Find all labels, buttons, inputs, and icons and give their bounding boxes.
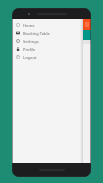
staticText: Logout	[23, 55, 37, 60]
staticText: Booking Table	[23, 31, 50, 36]
button[interactable]: Profile	[12, 45, 83, 53]
button[interactable]: Settings	[12, 37, 83, 45]
staticText: Home	[23, 23, 35, 28]
staticText: Settings	[23, 39, 39, 44]
button[interactable]: Logout	[12, 53, 83, 61]
staticText: Profile	[23, 47, 36, 52]
button[interactable]: Booking Table	[12, 29, 83, 37]
button[interactable]: Home	[12, 21, 83, 29]
